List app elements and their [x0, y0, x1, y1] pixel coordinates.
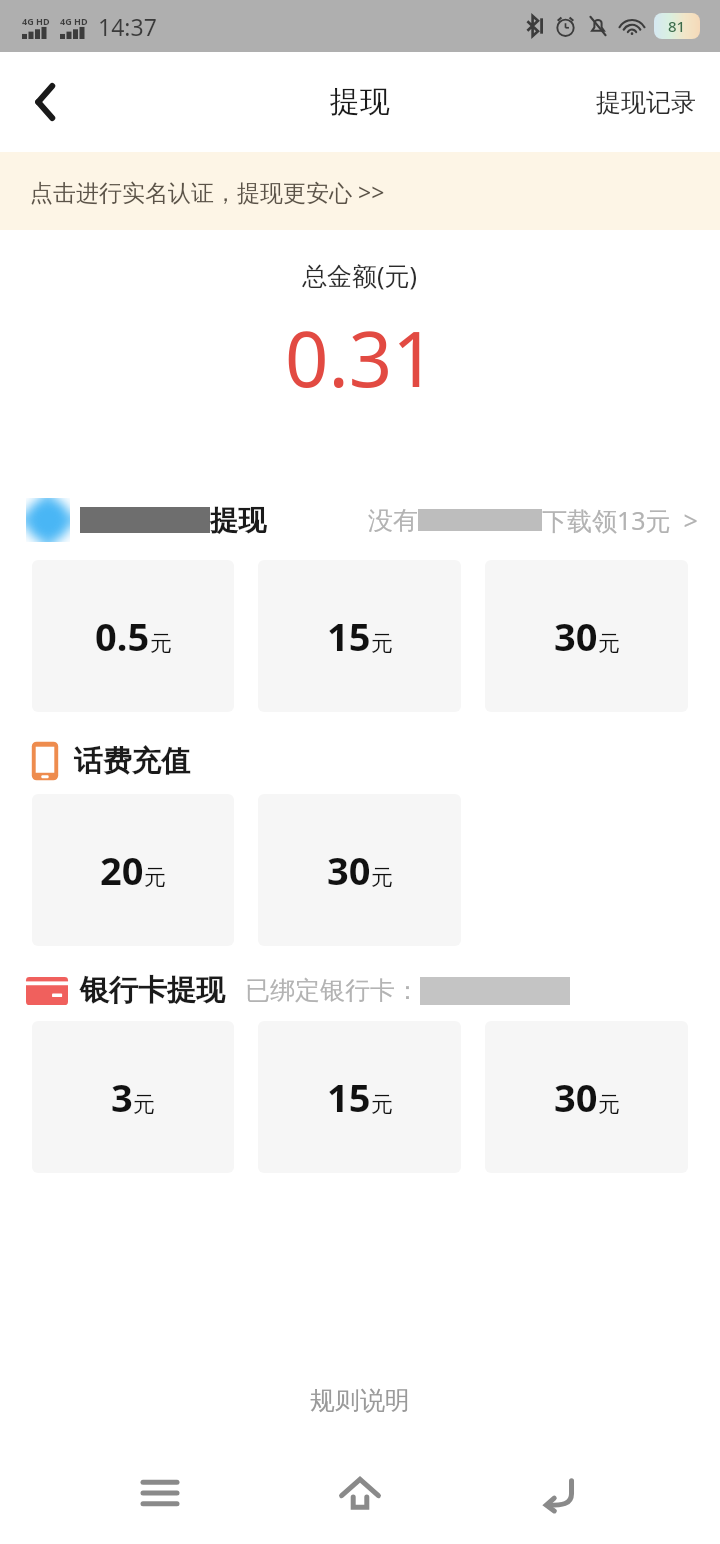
staticText: 15	[327, 1071, 371, 1123]
staticText: 元	[150, 630, 172, 658]
button[interactable]: 0.5	[32, 560, 234, 712]
staticText: 81	[668, 16, 686, 36]
button[interactable]: Back	[10, 66, 82, 138]
staticText: 0.5	[95, 610, 150, 662]
button[interactable]: 30	[258, 794, 461, 946]
staticText: 已绑定银行卡：	[245, 975, 420, 1006]
button[interactable]: Home	[320, 1458, 400, 1528]
staticText: 元	[144, 864, 166, 892]
staticText: 14:37	[98, 11, 157, 42]
staticText: 4G HD	[22, 15, 50, 27]
button[interactable]: 30	[485, 560, 688, 712]
button[interactable]: 15	[258, 560, 461, 712]
staticText: 元	[371, 864, 393, 892]
staticText: 元	[598, 1091, 620, 1119]
button[interactable]: 15	[258, 1021, 461, 1173]
staticText: 银行卡提现	[80, 972, 225, 1009]
staticText: 没有	[368, 505, 418, 536]
button[interactable]: 20	[32, 794, 234, 946]
button[interactable]: Back	[520, 1458, 600, 1528]
staticText: 下载领13元 >	[542, 503, 698, 537]
staticText: 规则说明	[310, 1385, 410, 1416]
button[interactable]: Recents	[120, 1458, 200, 1528]
staticText: 元	[371, 1091, 393, 1119]
button[interactable]: 30	[485, 1021, 688, 1173]
button[interactable]: 没有	[368, 503, 698, 537]
button[interactable]: 3	[32, 1021, 234, 1173]
staticText: 总金额(元)	[302, 258, 418, 292]
staticText: 提现记录	[596, 87, 696, 118]
staticText: 元	[133, 1091, 155, 1119]
button[interactable]: 提现记录	[590, 77, 702, 128]
staticText: 30	[554, 610, 598, 662]
staticText: 20	[100, 844, 144, 896]
staticText: 话费充值	[74, 743, 190, 780]
staticText: 0.31	[285, 306, 436, 410]
button[interactable]: 规则说明	[302, 1377, 418, 1424]
staticText: 提现	[330, 83, 390, 121]
staticText: 元	[371, 630, 393, 658]
button[interactable]: 点击进行实名认证，提现更安心 >>	[0, 152, 720, 230]
staticText: 3	[111, 1071, 133, 1123]
staticText: 点击进行实名认证，提现更安心 >>	[30, 176, 385, 207]
staticText: 30	[327, 844, 371, 896]
staticText: 15	[327, 610, 371, 662]
staticText: 元	[598, 630, 620, 658]
staticText: 提现	[210, 503, 266, 538]
staticText: 30	[554, 1071, 598, 1123]
staticText: 4G HD	[60, 15, 88, 27]
